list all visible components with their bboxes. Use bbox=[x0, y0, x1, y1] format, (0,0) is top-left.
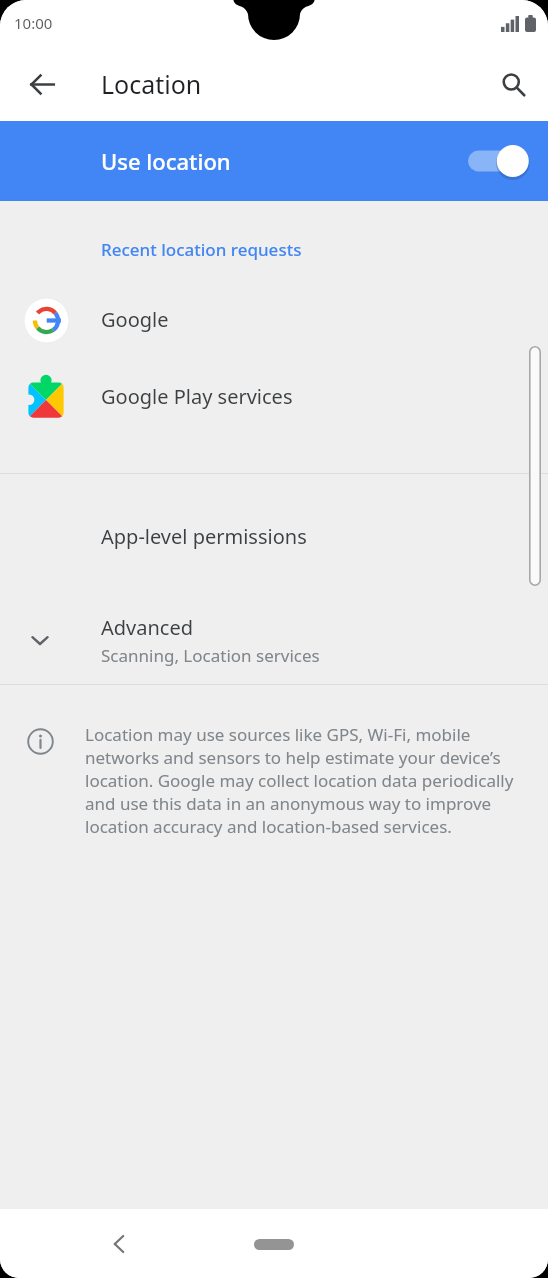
button[interactable]: Search bbox=[481, 52, 545, 116]
staticText: Use location bbox=[101, 146, 231, 176]
staticText: Google bbox=[101, 306, 169, 333]
staticText: Scanning, Location services bbox=[101, 644, 320, 667]
button[interactable]: Google Play services bbox=[0, 358, 548, 435]
button[interactable]: Back bbox=[10, 52, 74, 116]
button[interactable]: App-level permissions bbox=[0, 474, 548, 596]
staticText: Location bbox=[101, 67, 202, 101]
button[interactable]: Home bbox=[238, 1227, 310, 1261]
staticText: Google Play services bbox=[101, 383, 293, 410]
button[interactable]: Advanced bbox=[0, 596, 548, 684]
staticText: App-level permissions bbox=[101, 523, 307, 550]
staticText: Advanced bbox=[101, 614, 193, 641]
button[interactable]: Google bbox=[0, 281, 548, 358]
button[interactable]: Use location bbox=[0, 121, 548, 201]
staticText: 10:00 bbox=[14, 13, 53, 33]
button[interactable]: Back bbox=[92, 1216, 148, 1272]
staticText: Location may use sources like GPS, Wi-Fi… bbox=[85, 723, 538, 838]
staticText: Recent location requests bbox=[101, 238, 302, 261]
button[interactable]: Use location toggle bbox=[468, 141, 530, 181]
